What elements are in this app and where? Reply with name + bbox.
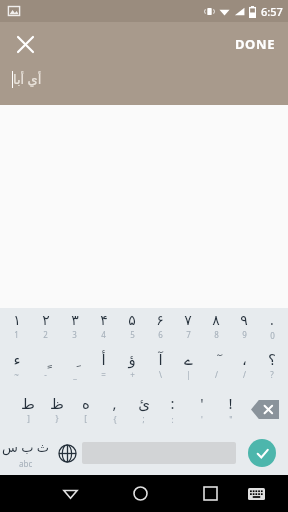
staticText: /	[215, 369, 218, 380]
button[interactable]: Enter	[236, 431, 288, 475]
staticText: ط	[21, 395, 35, 412]
button[interactable]: أ	[89, 343, 118, 387]
staticText: /	[243, 369, 246, 380]
staticText: ٢	[42, 312, 50, 328]
staticText: !	[228, 393, 233, 413]
button[interactable]: آ	[146, 343, 174, 387]
staticText: ۴	[100, 312, 108, 328]
staticText: +	[130, 369, 135, 380]
staticText: 4	[101, 329, 106, 340]
staticText: '	[200, 393, 204, 413]
staticText: ١	[13, 312, 21, 328]
button[interactable]: ۵	[118, 308, 146, 343]
staticText: ~	[14, 369, 19, 380]
staticText: 8	[214, 329, 219, 340]
staticText: ئ	[138, 395, 150, 412]
staticText: "	[229, 414, 233, 425]
staticText: |	[186, 369, 191, 380]
button[interactable]: .	[258, 308, 286, 343]
staticText: ظ	[50, 395, 64, 412]
button[interactable]: ء	[2, 343, 31, 387]
staticText: 3	[72, 329, 77, 340]
staticText: ,	[112, 393, 117, 413]
staticText: =	[101, 369, 106, 380]
staticText: ۵	[128, 312, 136, 328]
button[interactable]: !	[216, 387, 245, 431]
staticText: ء	[13, 351, 21, 368]
button[interactable]: ٢	[31, 308, 60, 343]
staticText: ؟	[268, 351, 276, 368]
button[interactable]: Home	[123, 475, 158, 512]
staticText: 6:57	[261, 4, 283, 19]
button[interactable]: ط	[14, 387, 42, 431]
button[interactable]: Back	[53, 475, 88, 512]
staticText: abc	[19, 458, 33, 469]
button[interactable]: Change language	[52, 431, 82, 475]
staticText: ۶	[156, 312, 164, 328]
staticText: ،	[242, 351, 247, 368]
staticText: }	[55, 413, 59, 424]
staticText: '	[201, 414, 203, 425]
staticText: ]	[27, 413, 30, 424]
button[interactable]: ١	[2, 308, 31, 343]
staticText: ے	[184, 351, 193, 368]
button[interactable]: ه	[71, 387, 100, 431]
button[interactable]: '	[187, 387, 216, 431]
button[interactable]: ۴	[89, 308, 118, 343]
button[interactable]: :	[158, 387, 187, 431]
button[interactable]: ظ	[42, 387, 71, 431]
staticText: \	[159, 369, 162, 380]
staticText: ث ب س	[2, 438, 50, 456]
staticText: 6	[158, 329, 163, 340]
button[interactable]: ئ	[129, 387, 158, 431]
staticText: 9	[242, 329, 247, 340]
staticText: [	[84, 413, 87, 424]
button[interactable]: ۶	[146, 308, 174, 343]
button[interactable]: ٓ	[202, 343, 230, 387]
button[interactable]: ے	[174, 343, 202, 387]
button[interactable]: ث ب س	[0, 431, 52, 475]
staticText: :	[170, 393, 175, 413]
staticText: ؤ	[128, 351, 136, 368]
button[interactable]: Backspace	[245, 387, 284, 431]
staticText: ٨	[212, 312, 220, 328]
staticText: ;	[142, 413, 145, 424]
button[interactable]: Keyboard	[240, 475, 272, 512]
staticText: .	[270, 310, 274, 329]
staticText: ٣	[71, 312, 79, 328]
staticText: ٧	[184, 312, 192, 328]
staticText: -	[44, 369, 47, 380]
button[interactable]: ؤ	[118, 343, 146, 387]
button[interactable]: ٍ	[31, 343, 60, 387]
staticText: آ	[158, 351, 163, 368]
button[interactable]: ,	[100, 387, 129, 431]
button[interactable]: ،	[230, 343, 258, 387]
staticText: أي أبا	[13, 70, 42, 88]
button[interactable]: ٧	[174, 308, 202, 343]
button[interactable]: DONE	[223, 27, 288, 61]
staticText: DONE	[235, 35, 276, 53]
staticText: 1	[14, 329, 19, 340]
button[interactable]: ؟	[258, 343, 286, 387]
staticText: 0	[270, 330, 275, 341]
button[interactable]: ٩	[230, 308, 258, 343]
button[interactable]: Close	[8, 27, 42, 61]
button[interactable]: ِ	[60, 343, 89, 387]
staticText: :	[171, 414, 174, 425]
staticText: ه	[82, 395, 90, 412]
staticText: 2	[43, 329, 48, 340]
button[interactable]: Recents	[193, 475, 228, 512]
button[interactable]: ٨	[202, 308, 230, 343]
staticText: _	[73, 369, 77, 380]
staticText: 5	[130, 329, 135, 340]
staticText: ?	[270, 369, 274, 380]
staticText: ٩	[240, 312, 248, 328]
button[interactable]: ٣	[60, 308, 89, 343]
staticText: {	[113, 414, 117, 425]
staticText: 7	[186, 329, 191, 340]
staticText: أ	[101, 351, 106, 368]
